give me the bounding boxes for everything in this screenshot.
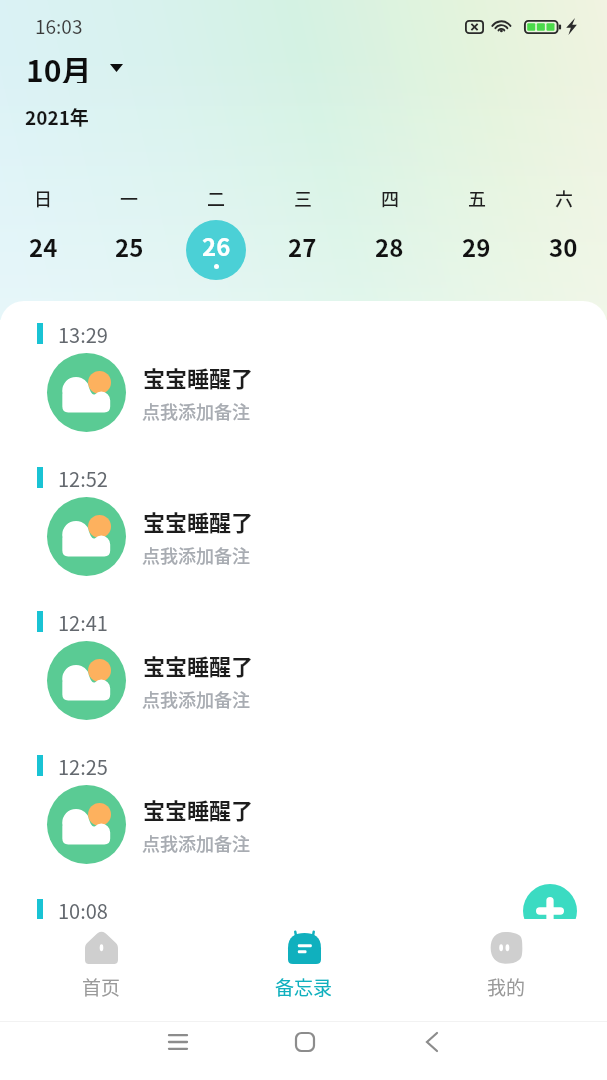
staticText: 10:08 xyxy=(58,896,108,925)
button[interactable]: 24 xyxy=(0,220,86,280)
button[interactable]: 首页 xyxy=(0,919,203,1021)
staticText: 点我添加备注 xyxy=(142,398,250,424)
button[interactable]: 我的 xyxy=(405,919,607,1021)
staticText: 26 xyxy=(202,228,231,263)
button[interactable]: 27 xyxy=(259,220,346,280)
staticText: 2021年 xyxy=(25,103,89,131)
staticText: 我的 xyxy=(487,973,526,1001)
staticText: 28 xyxy=(375,229,404,264)
button[interactable]: 10:08 xyxy=(0,888,607,1032)
staticText: 12:25 xyxy=(58,752,108,781)
staticText: 12:52 xyxy=(58,464,108,493)
staticText: 27 xyxy=(288,229,317,264)
staticText: 宝宝睡醒了 xyxy=(143,793,254,825)
button[interactable]: 13:29 xyxy=(0,312,607,456)
button[interactable]: 26 xyxy=(172,220,259,280)
staticText: 29 xyxy=(462,229,491,264)
button[interactable]: 28 xyxy=(346,220,433,280)
staticText: 宝宝睡醒了 xyxy=(143,649,254,681)
staticText: 点我添加备注 xyxy=(142,830,250,856)
button[interactable]: Back xyxy=(410,1020,454,1064)
button[interactable]: 12:25 xyxy=(0,744,607,888)
staticText: 三 xyxy=(294,185,312,211)
staticText: 一 xyxy=(120,185,138,211)
button[interactable]: Recent apps xyxy=(156,1020,200,1064)
button[interactable]: 25 xyxy=(86,220,172,280)
staticText: 首页 xyxy=(82,973,121,1001)
button[interactable]: Home xyxy=(283,1020,327,1064)
staticText: 宝宝睡醒了 xyxy=(143,505,254,537)
staticText: 备忘录 xyxy=(275,973,333,1001)
button[interactable]: 12:52 xyxy=(0,456,607,600)
staticText: 12:41 xyxy=(58,608,108,637)
staticText: 13:29 xyxy=(58,320,108,349)
button[interactable]: 30 xyxy=(520,220,607,280)
staticText: 宝宝睡醒了 xyxy=(143,361,254,393)
staticText: 16:03 xyxy=(35,12,83,40)
staticText: 二 xyxy=(207,185,225,211)
staticText: 六 xyxy=(555,185,573,211)
staticText: 点我添加备注 xyxy=(142,686,250,712)
staticText: 10月 xyxy=(26,47,92,83)
button[interactable]: 29 xyxy=(433,220,520,280)
button[interactable]: 12:41 xyxy=(0,600,607,744)
button[interactable]: 备忘录 xyxy=(203,919,405,1021)
staticText: 点我添加备注 xyxy=(142,542,250,568)
staticText: 日 xyxy=(34,185,52,211)
staticText: 四 xyxy=(381,185,399,211)
staticText: 30 xyxy=(549,229,578,264)
staticText: 五 xyxy=(468,185,486,211)
staticText: 25 xyxy=(115,229,144,264)
button[interactable]: Add memo xyxy=(523,884,577,938)
button[interactable]: Change month xyxy=(26,47,127,83)
staticText: 24 xyxy=(29,229,58,264)
